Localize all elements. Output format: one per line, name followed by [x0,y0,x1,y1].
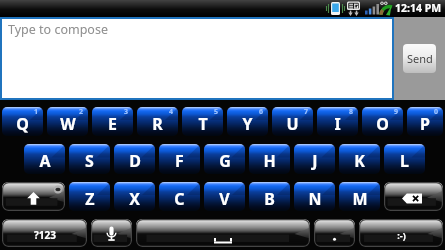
button[interactable]: V [204,182,245,211]
staticText: 3 [124,107,129,117]
button[interactable]: T [182,107,223,136]
button[interactable]: ?123 [2,219,87,247]
staticText: Q [16,113,29,135]
button[interactable]: M [339,182,380,211]
staticText: O [376,113,389,135]
button[interactable]: A [24,144,65,174]
staticText: W [60,113,76,135]
button[interactable]: F [159,144,200,174]
button[interactable]: :-) [359,219,443,247]
staticText: 1 [34,107,39,117]
staticText: :-) [397,229,406,241]
button[interactable]: K [339,144,380,174]
button[interactable]: O [362,107,403,136]
button[interactable]: G [204,144,245,174]
staticText: P [420,113,430,135]
staticText: D [129,150,141,172]
button[interactable]: S [69,144,110,174]
button[interactable]: I [317,107,358,136]
button[interactable]: D [114,144,155,174]
staticText: J [312,150,318,172]
staticText: 12:14 PM [395,1,442,15]
button[interactable]: P [407,107,443,136]
button[interactable]: Send [403,44,436,73]
staticText: Y [242,113,253,135]
staticText: Send [407,51,433,66]
button[interactable]: Voice input [91,219,132,247]
staticText: 2 [79,107,84,117]
button[interactable]: Q [2,107,43,136]
button[interactable]: Period [314,219,355,247]
button[interactable]: U [272,107,313,136]
staticText: R [152,113,163,135]
staticText: V [219,188,230,210]
button[interactable]: R [137,107,178,136]
staticText: ?123 [34,228,56,242]
staticText: H [263,150,276,172]
button[interactable]: Shift [2,182,65,211]
staticText: T [198,113,208,135]
staticText: I [334,113,341,135]
staticText: 4 [169,107,174,117]
staticText: U [286,113,299,135]
button[interactable]: Z [69,182,110,211]
staticText: E [108,113,117,135]
staticText: X [129,188,140,210]
button[interactable]: Type to compose [2,19,392,98]
staticText: 0 [434,107,439,117]
button[interactable]: L [384,144,425,174]
staticText: B [264,188,275,210]
staticText: 7 [304,107,309,117]
button[interactable]: H [249,144,290,174]
button[interactable]: Backspace [384,182,443,211]
staticText: Z [85,188,95,210]
staticText: F [175,150,184,172]
staticText: 9 [394,107,399,117]
staticText: 5 [214,107,219,117]
button[interactable]: W [47,107,88,136]
button[interactable]: E [92,107,133,136]
staticText: C [174,188,185,210]
staticText: S [85,150,94,172]
staticText: M [352,188,368,210]
button[interactable]: Y [227,107,268,136]
staticText: Type to compose [8,21,108,38]
staticText: K [354,150,365,172]
staticText: G [219,150,231,172]
staticText: N [308,188,322,210]
button[interactable]: B [249,182,290,211]
staticText: 8 [349,107,354,117]
button[interactable]: N [294,182,335,211]
button[interactable]: Space [136,219,310,247]
button[interactable]: X [114,182,155,211]
staticText: 6 [259,107,264,117]
button[interactable]: C [159,182,200,211]
staticText: A [39,150,51,172]
staticText: L [400,150,409,172]
button[interactable]: J [294,144,335,174]
